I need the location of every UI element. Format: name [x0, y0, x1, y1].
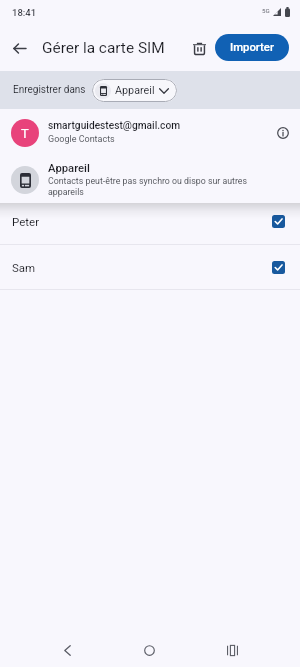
button[interactable]: Sam	[0, 245, 300, 289]
button[interactable]: Peter	[0, 203, 300, 244]
button[interactable]: Appareil	[92, 79, 177, 102]
staticText: Google Contacts	[48, 134, 115, 145]
staticText: T	[21, 126, 29, 141]
staticText: Appareil	[48, 162, 90, 175]
staticText: Enregistrer dans	[13, 84, 86, 96]
staticText: smartguidestest@gmail.com	[48, 120, 181, 132]
staticText: Gérer la carte SIM	[42, 39, 165, 57]
staticText: 5G	[262, 7, 270, 14]
staticText: Importer	[230, 41, 274, 54]
staticText: Contacts peut-être pas synchro ou dispo …	[48, 176, 252, 197]
button[interactable]: T	[0, 109, 300, 156]
button[interactable]: Appareil	[0, 156, 300, 203]
button[interactable]: Importer	[215, 34, 289, 61]
staticText: Sam	[12, 261, 272, 274]
staticText: 18:41	[12, 7, 37, 18]
button[interactable]: Back	[5, 34, 33, 62]
staticText: Peter	[12, 215, 272, 228]
button[interactable]: Delete	[186, 35, 212, 61]
button[interactable]: Home	[128, 633, 171, 667]
button[interactable]: Recent apps	[211, 633, 254, 667]
button[interactable]: Back	[46, 633, 89, 667]
staticText: Appareil	[115, 84, 155, 97]
button[interactable]: Account info	[270, 120, 296, 146]
